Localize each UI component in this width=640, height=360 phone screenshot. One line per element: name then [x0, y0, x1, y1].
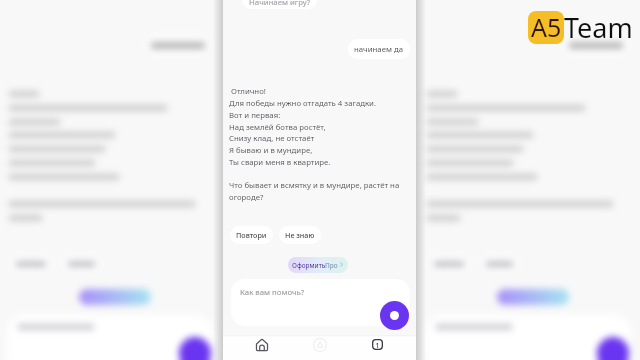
staticText: Ты свари меня в квартире.: [229, 157, 331, 168]
staticText: A5: [531, 11, 562, 43]
button[interactable]: Не знаю: [279, 226, 321, 244]
staticText: огороде?: [229, 192, 264, 203]
staticText: Отлично!: [229, 86, 266, 97]
staticText: 1: [375, 340, 380, 350]
staticText: Для победы нужно отгадать 4 загадки.: [229, 98, 377, 109]
staticText: Повтори: [236, 230, 267, 240]
button[interactable]: Home: [248, 332, 275, 357]
button[interactable]: Assistant: [306, 332, 333, 357]
staticText: Я бываю и в мундире,: [229, 145, 313, 156]
staticText: Оформить: [292, 261, 326, 270]
staticText: Снизу клад, не отстаёт: [229, 133, 315, 144]
button[interactable]: Повтори: [230, 226, 273, 244]
button[interactable]: Voice input: [380, 301, 409, 330]
staticText: Team: [564, 9, 633, 46]
button[interactable]: Как вам помочь?: [231, 279, 410, 326]
button[interactable]: Оформить: [288, 257, 348, 273]
staticText: начинаем да: [354, 44, 404, 55]
staticText: Про: [325, 261, 338, 270]
staticText: Вот и первая:: [229, 110, 281, 121]
staticText: Начинаем игру?: [249, 0, 311, 8]
button[interactable]: Tabs: [364, 332, 391, 357]
staticText: Не знаю: [285, 230, 315, 240]
staticText: Как вам помочь?: [240, 287, 305, 298]
staticText: Над землёй ботва ростёт,: [229, 122, 326, 133]
staticText: Что бывает и всмятку и в мундире, растёт…: [229, 180, 400, 191]
button[interactable]: начинаем да: [348, 39, 410, 59]
